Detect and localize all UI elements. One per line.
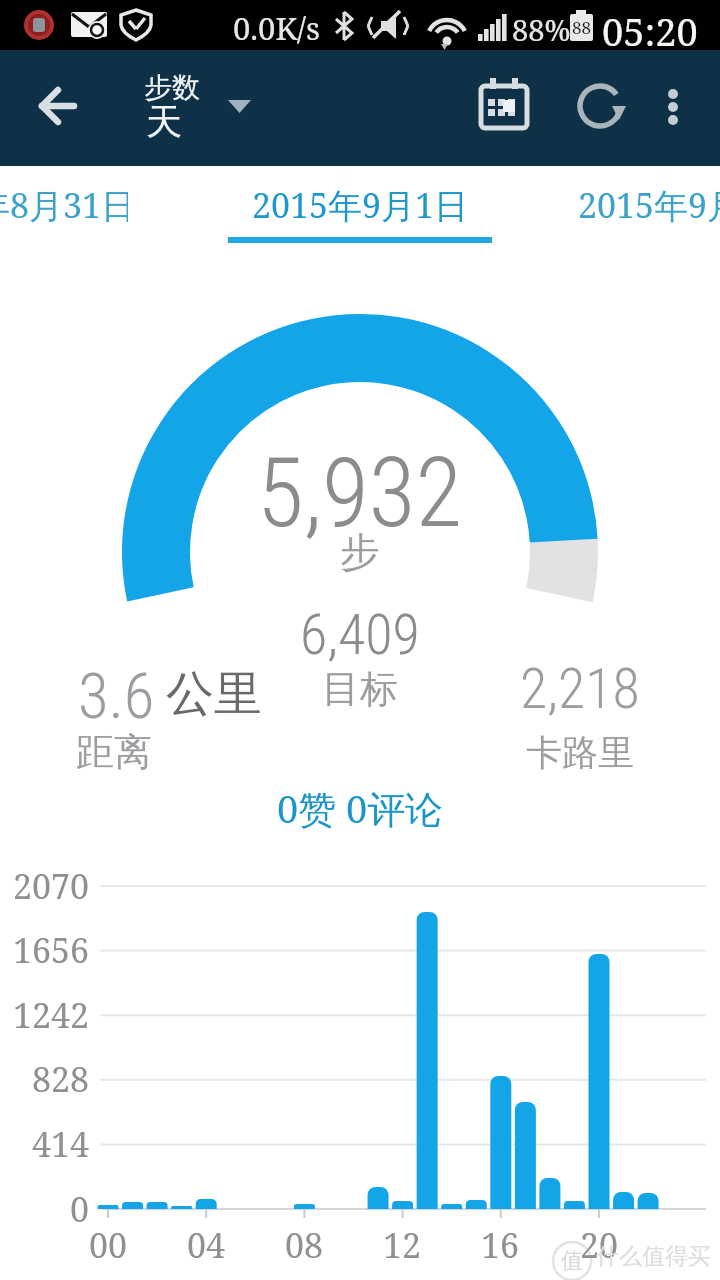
button[interactable]	[130, 60, 260, 150]
staticText: 88%	[512, 10, 571, 49]
staticText: 08	[285, 1222, 324, 1268]
staticText: 0.0K/s	[233, 7, 321, 49]
staticText: 公里	[166, 664, 262, 724]
staticText: 16	[481, 1222, 520, 1268]
staticText: 5,932	[257, 437, 463, 550]
staticText: 04	[187, 1222, 226, 1268]
staticText: 0	[70, 1186, 90, 1232]
staticText: 天	[146, 99, 182, 144]
staticText: 值	[561, 1247, 583, 1275]
button[interactable]	[460, 65, 545, 145]
staticText: 2070	[13, 863, 90, 909]
staticText: 步数	[144, 70, 200, 105]
staticText: 距离	[76, 728, 152, 776]
staticText: 1656	[13, 927, 90, 973]
staticText: 步	[340, 527, 380, 577]
staticText: 1242	[13, 992, 90, 1038]
staticText: 12	[383, 1222, 422, 1268]
button[interactable]: 0赞 0评论	[0, 782, 720, 834]
staticText: 414	[32, 1121, 90, 1167]
staticText: 什么值得买	[596, 1242, 711, 1271]
staticText: 2,218	[520, 656, 640, 722]
staticText: 目标	[322, 665, 398, 713]
staticText: 2015年8月31日	[0, 182, 128, 228]
staticText: 20	[580, 1222, 619, 1268]
staticText: 2015年9月2日	[578, 182, 720, 228]
button[interactable]: 2015年9月2日	[578, 182, 720, 228]
staticText: 828	[32, 1056, 90, 1102]
staticText: 00	[89, 1222, 128, 1268]
button[interactable]	[645, 65, 700, 145]
staticText: 3.6	[78, 660, 155, 734]
staticText: 05:20	[602, 5, 698, 57]
button[interactable]	[558, 65, 642, 145]
staticText: 88	[572, 16, 592, 39]
staticText: 2015年9月1日	[252, 182, 469, 228]
staticText: 6,409	[300, 602, 420, 668]
staticText: 卡路里	[526, 730, 634, 775]
button[interactable]: 2015年8月31日	[0, 182, 128, 228]
staticText: 0赞 0评论	[277, 782, 444, 834]
button[interactable]: 2015年9月1日	[0, 182, 720, 228]
button[interactable]	[20, 70, 90, 140]
